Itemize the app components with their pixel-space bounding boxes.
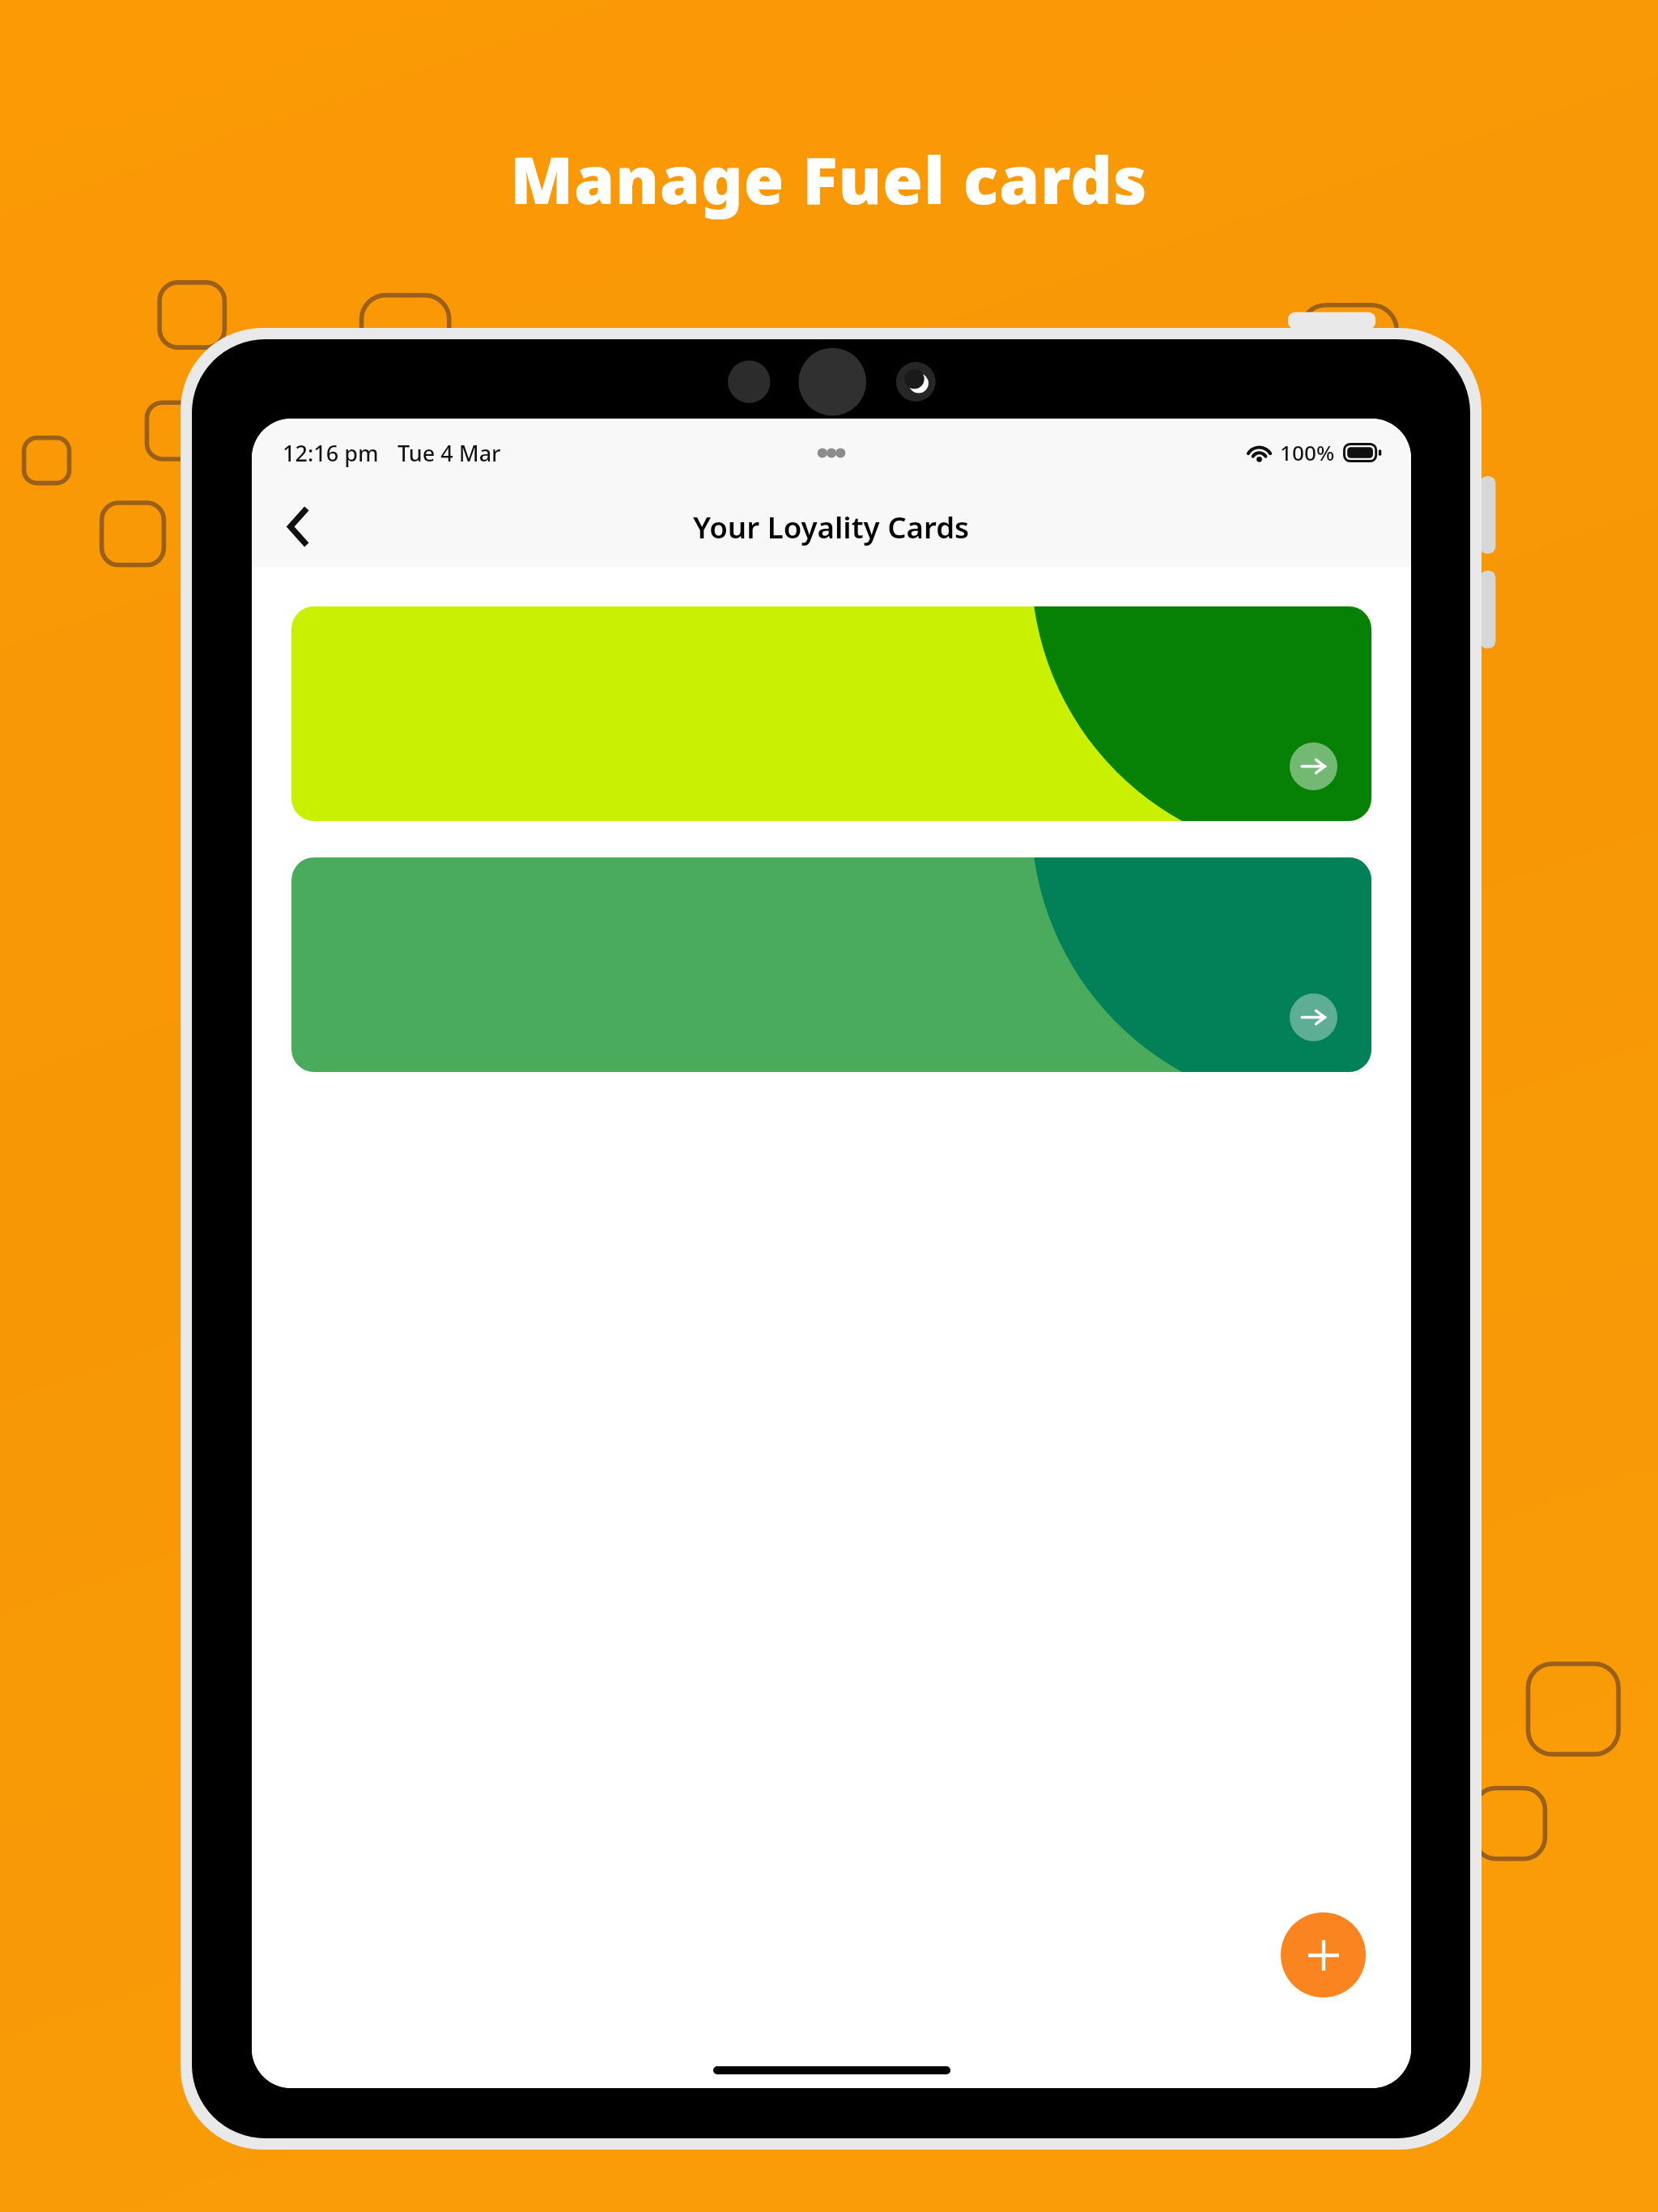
button[interactable]: Back — [263, 491, 334, 562]
staticText: 12:16 pm — [283, 438, 379, 468]
staticText: Manage Fuel cards — [0, 134, 1658, 223]
button[interactable]: Add card — [1281, 1912, 1366, 1997]
button[interactable]: Open card details — [291, 857, 1371, 1072]
staticText: 100% — [1280, 438, 1335, 467]
button[interactable]: Open card details — [1290, 742, 1337, 790]
button[interactable]: Open card details — [291, 606, 1371, 821]
staticText: Your Loyality Cards — [693, 507, 970, 547]
button[interactable]: Open card details — [1290, 993, 1337, 1041]
staticText: Tue 4 Mar — [397, 438, 501, 468]
